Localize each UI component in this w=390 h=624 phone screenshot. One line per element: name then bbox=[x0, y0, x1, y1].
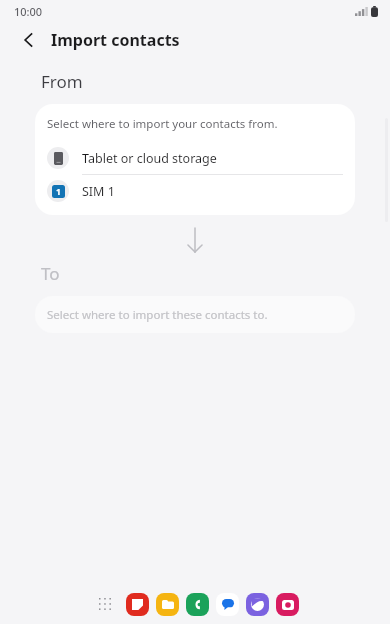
button[interactable]: Tablet or cloud storage bbox=[35, 142, 355, 175]
staticText: Select where to import these contacts to… bbox=[47, 307, 268, 323]
button[interactable]: My Files bbox=[156, 593, 179, 616]
staticText: From bbox=[41, 70, 83, 93]
button[interactable]: 1 bbox=[35, 175, 355, 207]
button[interactable]: Internet bbox=[246, 593, 269, 616]
staticText: 1 bbox=[56, 186, 61, 198]
staticText: Tablet or cloud storage bbox=[82, 150, 217, 167]
button[interactable]: Phone bbox=[186, 593, 209, 616]
button[interactable]: Camera bbox=[276, 593, 299, 616]
staticText: Import contacts bbox=[51, 29, 180, 51]
staticText: Select where to import your contacts fro… bbox=[47, 116, 278, 132]
button[interactable]: Back bbox=[12, 23, 46, 57]
staticText: 10:00 bbox=[14, 4, 43, 19]
button[interactable]: Messages bbox=[216, 593, 239, 616]
staticText: SIM 1 bbox=[82, 183, 115, 200]
button[interactable]: Notes bbox=[126, 593, 149, 616]
button[interactable]: All apps bbox=[92, 591, 118, 617]
button[interactable]: Select where to import these contacts to… bbox=[35, 296, 355, 333]
staticText: To bbox=[41, 262, 60, 285]
